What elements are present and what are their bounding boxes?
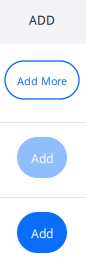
- staticText: Add: [31, 225, 53, 241]
- staticText: Add More: [17, 74, 67, 88]
- staticText: ADD: [29, 12, 55, 28]
- button[interactable]: Add More: [5, 61, 79, 99]
- button[interactable]: Add: [17, 212, 67, 253]
- staticText: Add: [31, 150, 53, 166]
- button[interactable]: Add: [17, 137, 67, 178]
